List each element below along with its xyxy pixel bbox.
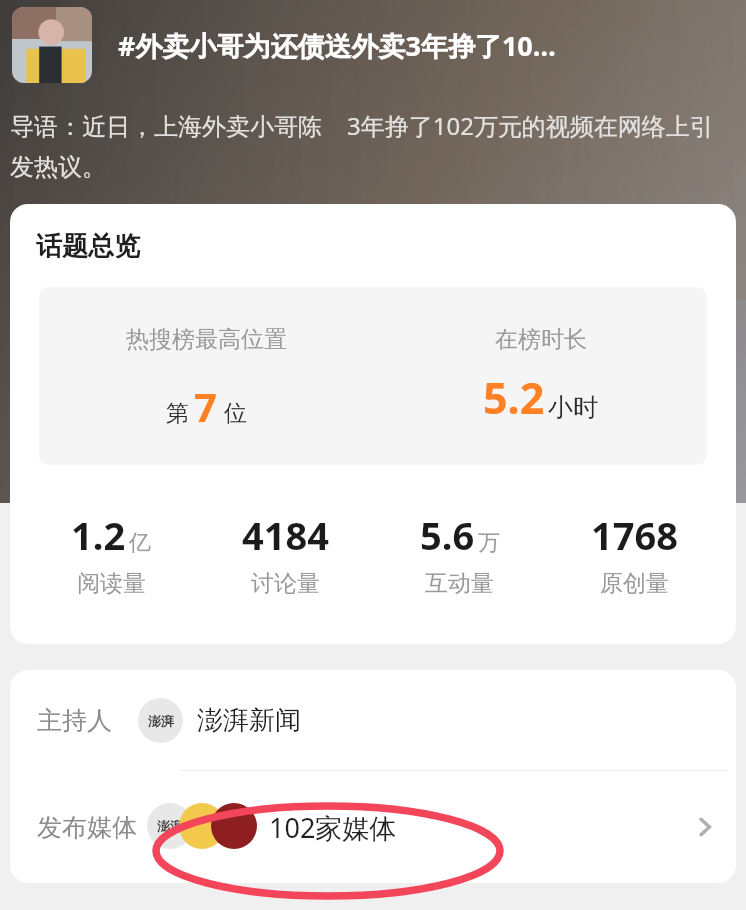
staticText: 7 [194, 379, 217, 433]
staticText: 阅读量 [77, 569, 146, 598]
staticText: 位 [224, 399, 247, 428]
button[interactable]: 主持人 [10, 670, 736, 770]
staticText: 主持人 [37, 705, 112, 736]
staticText: 在榜时长 [495, 325, 587, 354]
staticText: 1.2 [71, 509, 126, 561]
staticText: 话题总览 [36, 230, 140, 263]
staticText: 导语：近日，上海外卖小哥陈 3年挣了102万元的视频在网络上引发热议。 [10, 109, 736, 182]
staticText: 原创量 [600, 569, 669, 598]
staticText: 5.2 [483, 368, 545, 427]
staticText: #外卖小哥为还债送外卖3年挣了10… [118, 27, 556, 64]
staticText: 4184 [242, 509, 329, 561]
staticText: 澎湃 [157, 818, 183, 834]
staticText: 发布媒体 [37, 812, 137, 843]
staticText: 5.6 [420, 509, 475, 561]
staticText: 澎湃新闻 [197, 704, 301, 737]
button[interactable]: 发布媒体 [10, 771, 736, 883]
button[interactable]: 话题配图 [12, 7, 92, 83]
staticText: 小时 [548, 392, 598, 423]
staticText: 讨论量 [251, 569, 320, 598]
other: 查看媒体列表 [694, 816, 716, 838]
staticText: 1768 [591, 509, 678, 561]
staticText: 澎湃 [148, 713, 174, 729]
staticText: 热搜榜最高位置 [126, 325, 287, 354]
staticText: 万 [478, 529, 500, 557]
staticText: 第 [166, 399, 189, 428]
staticText: 102家媒体 [269, 809, 397, 846]
staticText: 亿 [129, 529, 151, 557]
staticText: 互动量 [425, 569, 494, 598]
